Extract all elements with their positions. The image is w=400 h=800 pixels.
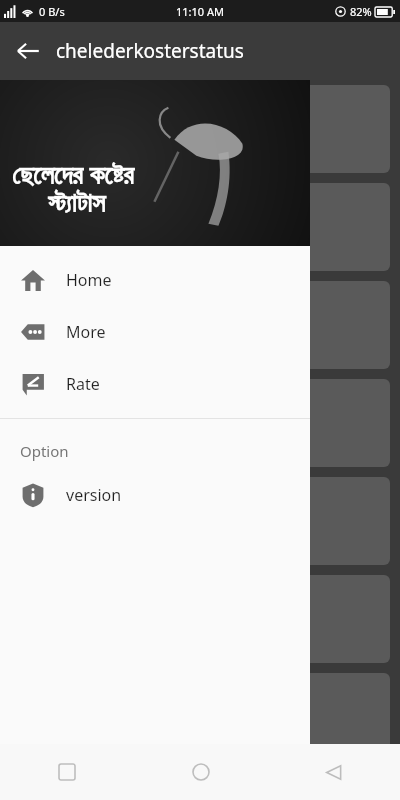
button[interactable]: স্ট্যাটাস- ৭ bbox=[10, 673, 390, 761]
button[interactable]: স্ট্যাটাস- ৫ bbox=[10, 477, 390, 565]
staticText: স্ট্যাটাস- ২ bbox=[28, 212, 101, 242]
button[interactable]: Rate bbox=[0, 358, 310, 410]
button[interactable]: স্ট্যাটাস- ৪ bbox=[10, 379, 390, 467]
staticText: স্ট্যাটাস- ৫ bbox=[28, 506, 100, 536]
button[interactable]: স্ট্যাটাস- ২ bbox=[10, 183, 390, 271]
button[interactable]: স্ট্যাটাস- ১ bbox=[10, 85, 390, 173]
staticText: Rate bbox=[66, 373, 100, 395]
staticText: More bbox=[66, 321, 106, 343]
button[interactable]: version bbox=[0, 469, 310, 521]
button[interactable]: Home bbox=[0, 254, 310, 306]
staticText: Option bbox=[20, 441, 69, 461]
button[interactable]: স্ট্যাটাস- ৬ bbox=[10, 575, 390, 663]
staticText: স্ট্যাটাস- ৪ bbox=[28, 408, 99, 438]
button[interactable]: Back bbox=[0, 23, 56, 79]
staticText: স্ট্যাটাস bbox=[48, 191, 106, 217]
staticText: 11:10 AM bbox=[176, 4, 224, 19]
staticText: 82% bbox=[350, 4, 372, 19]
staticText: স্ট্যাটাস- ৩ bbox=[28, 310, 101, 340]
button[interactable]: Back bbox=[267, 744, 400, 800]
staticText: Home bbox=[66, 269, 112, 291]
staticText: 0 B/s bbox=[39, 4, 65, 19]
button[interactable]: Recents bbox=[0, 744, 134, 800]
staticText: chelederkosterstatus bbox=[56, 38, 244, 64]
button[interactable]: স্ট্যাটাস- ৩ bbox=[10, 281, 390, 369]
staticText: ছেলেদের কষ্টের bbox=[12, 156, 134, 191]
staticText: version bbox=[66, 484, 122, 506]
button[interactable]: More bbox=[0, 306, 310, 358]
button[interactable]: Home bbox=[134, 744, 267, 800]
